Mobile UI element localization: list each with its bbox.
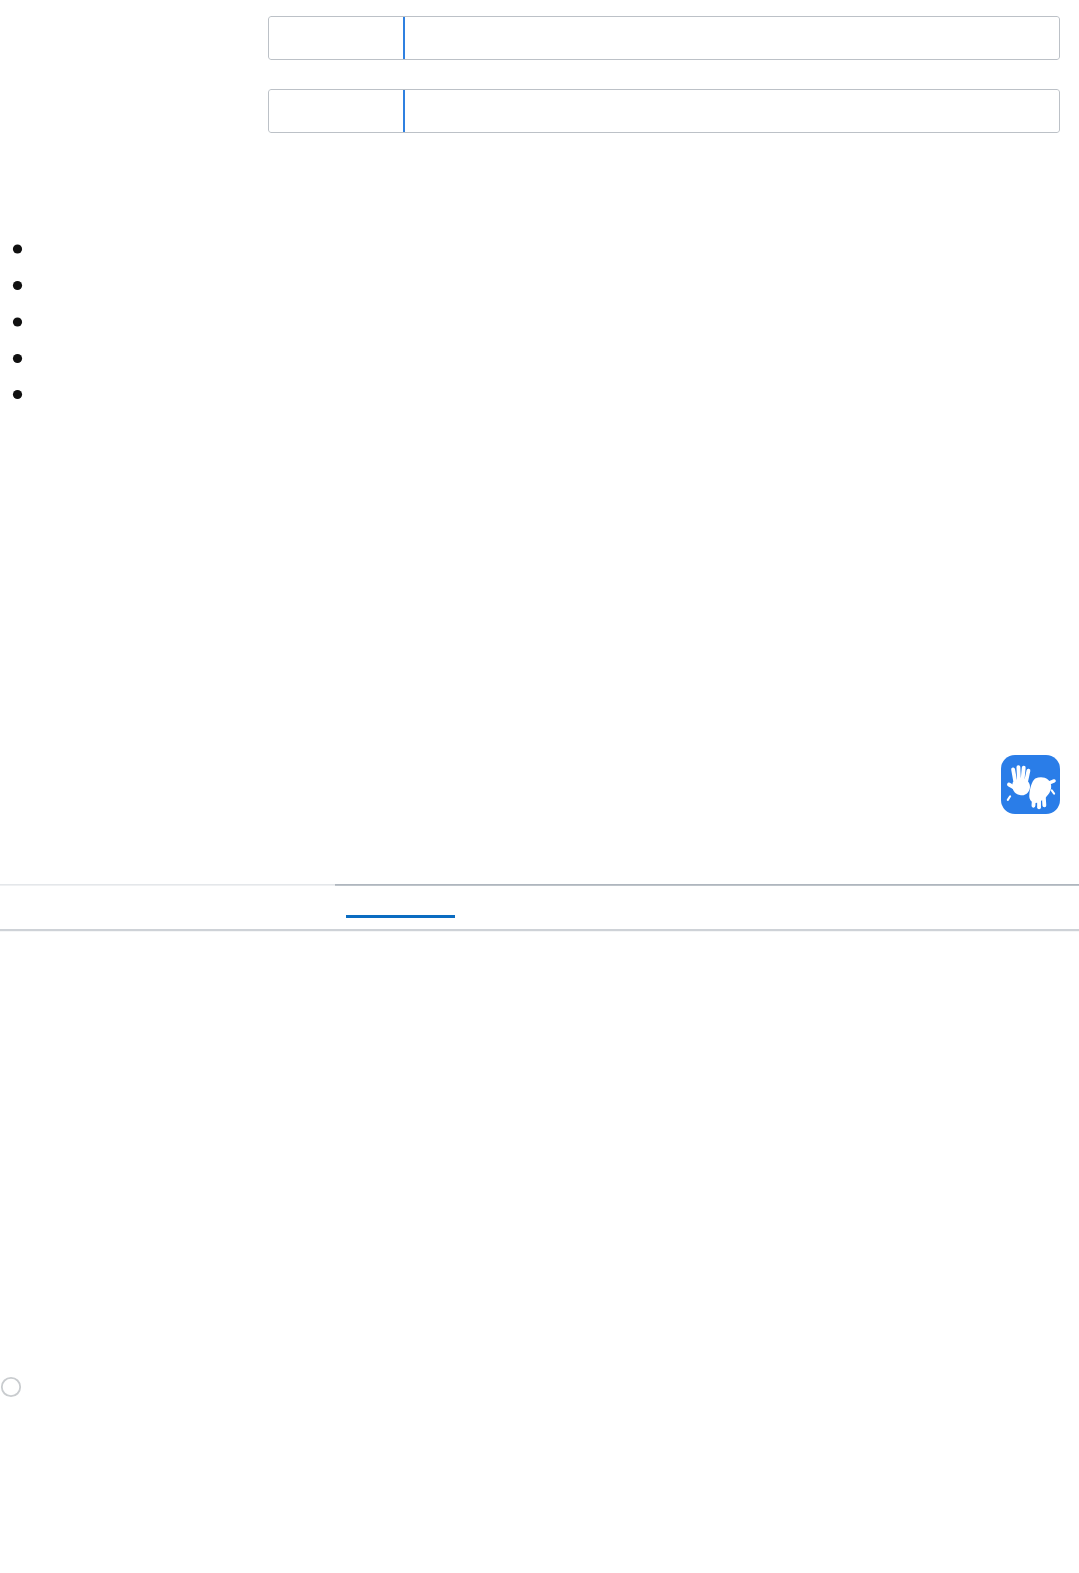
- button[interactable]: [268, 89, 1060, 133]
- button[interactable]: [268, 16, 1060, 60]
- button[interactable]: Link: [346, 900, 455, 918]
- button[interactable]: Sign language accessibility: [1001, 755, 1060, 814]
